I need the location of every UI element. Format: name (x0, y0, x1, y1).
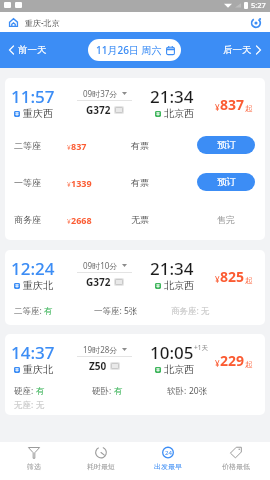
staticText: G372 (86, 103, 111, 117)
staticText: 11月26日 周六 (96, 43, 162, 57)
staticText: 有 (44, 306, 53, 317)
staticText: 229 (220, 351, 245, 370)
staticText: 24 (165, 449, 172, 457)
button[interactable]: 11:57 (5, 78, 265, 240)
staticText: 出发最早 (154, 462, 182, 471)
staticText: 起 (245, 276, 253, 285)
button[interactable]: 预订 (197, 173, 255, 191)
staticText: 12:24 (11, 257, 55, 280)
staticText: 耗时最短 (87, 462, 115, 471)
staticText: +1天 (194, 343, 208, 352)
staticText: G372 (86, 275, 111, 289)
staticText: 商务座 (14, 214, 41, 225)
staticText: 软卧: (167, 385, 189, 397)
staticText: 有票 (131, 140, 149, 151)
button[interactable]: 前一天 (6, 39, 50, 61)
staticText: 重庆北 (23, 363, 53, 376)
staticText: 无 (36, 400, 45, 411)
staticText: ¥ (215, 102, 220, 113)
staticText: 825 (220, 267, 245, 286)
staticText: 硬座: (14, 385, 36, 397)
staticText: 有票 (131, 177, 149, 188)
staticText: 无座: (14, 399, 36, 411)
staticText: 售完 (217, 214, 235, 225)
staticText: 10:05 (150, 341, 194, 364)
staticText: 前一天 (18, 44, 47, 56)
staticText: 预订 (217, 176, 236, 188)
staticText: Z50 (89, 359, 107, 373)
staticText: ¥ (67, 217, 71, 226)
staticText: 5张 (124, 305, 138, 317)
button[interactable]: 11月26日 周六 (88, 39, 181, 61)
staticText: 一等座: (94, 305, 124, 317)
staticText: 北京西 (164, 363, 194, 376)
staticText: 重庆西 (23, 107, 53, 120)
staticText: 无 (201, 306, 210, 317)
staticText: 1339 (71, 177, 92, 189)
staticText: ¥ (67, 180, 71, 189)
staticText: ¥ (215, 358, 220, 369)
staticText: 后一天 (223, 44, 252, 56)
staticText: 5:27 (251, 0, 266, 10)
button[interactable]: Home (8, 17, 19, 28)
staticText: 筛选 (27, 462, 41, 471)
staticText: 无票 (131, 214, 149, 225)
staticText: 有 (114, 386, 123, 397)
staticText: 2668 (71, 214, 92, 226)
staticText: 二等座 (14, 140, 41, 151)
staticText: ¥ (67, 143, 71, 152)
staticText: 商务座: (171, 305, 201, 317)
staticText: 预订 (217, 139, 236, 151)
button[interactable]: 一等座 (5, 162, 265, 199)
staticText: 11:57 (11, 85, 55, 108)
staticText: 21:34 (150, 85, 194, 108)
staticText: 北京西 (164, 107, 194, 120)
button[interactable]: 商务座 (5, 199, 265, 236)
staticText: 价格最低 (222, 462, 250, 471)
button[interactable]: 14:37 (5, 334, 265, 415)
button[interactable]: 耗时最短 (67, 442, 134, 480)
staticText: 837 (220, 95, 245, 114)
button[interactable]: 筛选 (0, 442, 67, 480)
button[interactable]: Customer service (247, 14, 264, 31)
staticText: 起 (245, 104, 253, 113)
staticText: 14:37 (11, 341, 55, 364)
button[interactable]: 预订 (197, 136, 255, 154)
staticText: 重庆-北京 (25, 17, 60, 28)
button[interactable]: 后一天 (220, 39, 264, 61)
staticText: 有 (36, 386, 45, 397)
button[interactable]: 价格最低 (202, 442, 270, 480)
staticText: 一等座 (14, 177, 41, 188)
staticText: 19时28分 (83, 344, 118, 355)
staticText: 北京西 (164, 279, 194, 292)
staticText: 20张 (189, 385, 208, 397)
staticText: 起 (245, 360, 253, 369)
staticText: ¥ (215, 274, 220, 285)
button[interactable]: 12:24 (5, 250, 265, 325)
staticText: 硬卧: (92, 385, 114, 397)
staticText: 09时10分 (83, 260, 118, 271)
button[interactable]: 出发最早 (134, 442, 202, 480)
staticText: 21:34 (150, 257, 194, 280)
staticText: 837 (71, 140, 87, 152)
button[interactable]: 二等座 (5, 125, 265, 162)
staticText: 二等座: (14, 305, 44, 317)
staticText: 09时37分 (83, 88, 118, 99)
staticText: 重庆北 (23, 279, 53, 292)
